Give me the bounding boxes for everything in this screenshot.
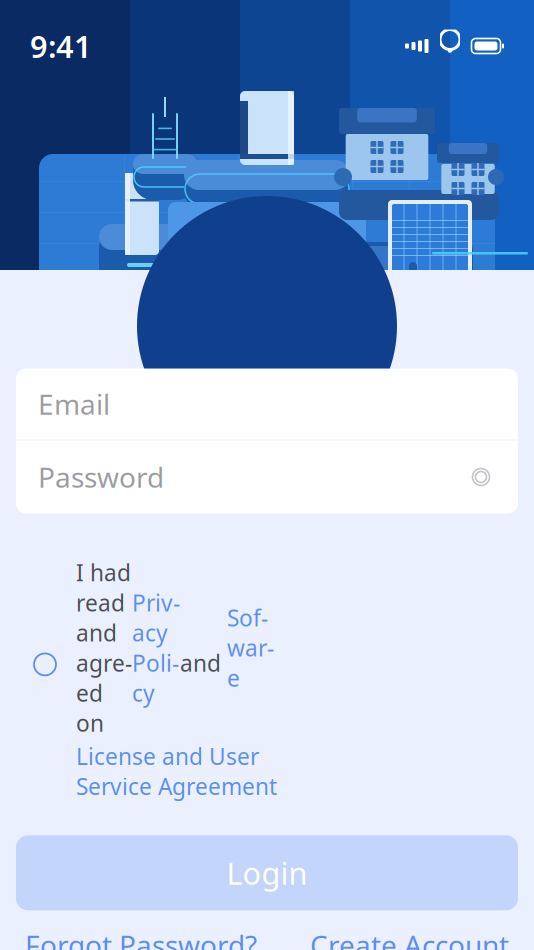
staticText: Forgot Password? <box>25 926 257 950</box>
button[interactable]: I had read and agreed on <box>0 513 534 801</box>
staticText: I had read and agreed on <box>76 557 132 738</box>
button[interactable]: Create Account <box>310 918 509 950</box>
button[interactable]: Login <box>16 835 518 910</box>
staticText: 9:41 <box>30 26 92 66</box>
button[interactable]: Email <box>16 368 518 439</box>
staticText: License and User Service Agreement <box>76 741 277 801</box>
button[interactable]: Forgot Password? <box>25 918 257 950</box>
staticText: Login <box>226 852 307 893</box>
staticText: Privacy Policy <box>132 588 180 708</box>
staticText: Create Account <box>310 926 509 950</box>
staticText: Password <box>38 458 164 496</box>
staticText: Sofware <box>227 603 274 693</box>
staticText: Email <box>38 385 110 423</box>
button[interactable]: Password <box>16 440 518 513</box>
staticText: and <box>180 618 227 678</box>
